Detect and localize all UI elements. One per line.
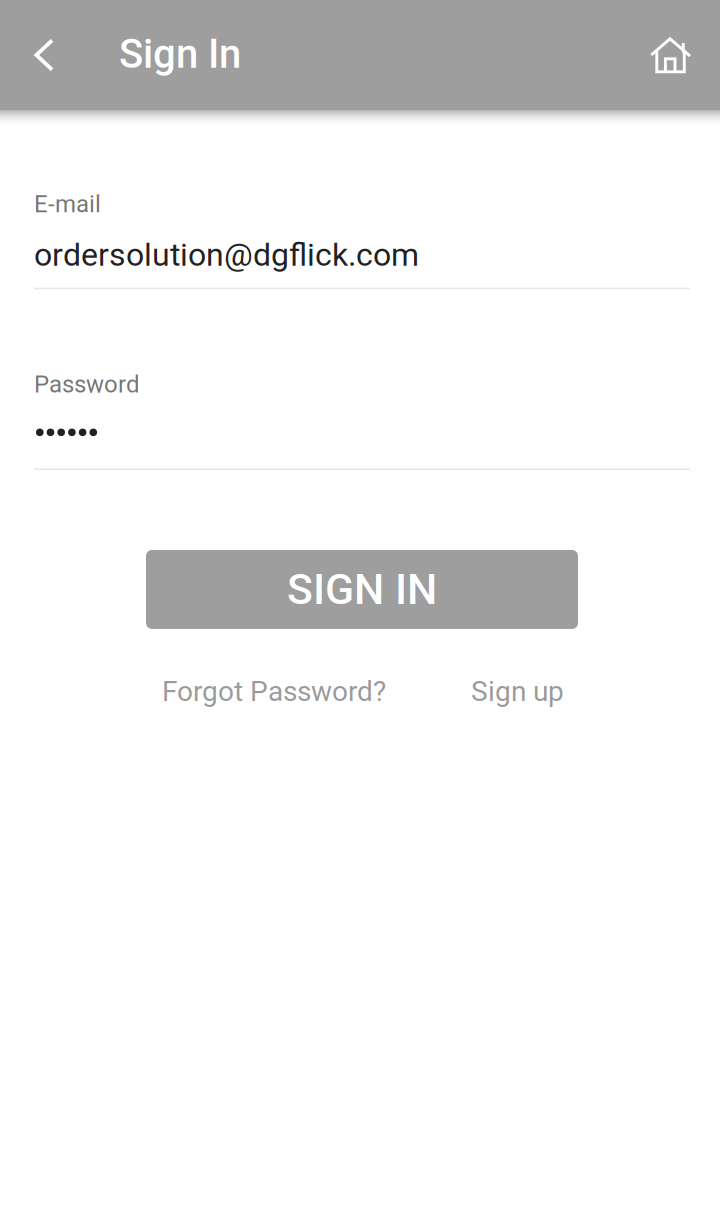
button[interactable]: Forgot Password? (162, 675, 386, 708)
staticText: Sign up (471, 675, 564, 708)
staticText: SIGN IN (287, 564, 437, 614)
button[interactable]: Sign up (471, 675, 564, 708)
button[interactable]: Back (9, 0, 79, 110)
staticText: E-mail (34, 190, 101, 218)
staticText: Password (34, 370, 140, 398)
button[interactable]: Home (630, 0, 710, 110)
button[interactable]: SIGN IN (146, 550, 578, 629)
staticText: Sign In (119, 31, 241, 77)
staticText: ordersolution@dgflick.com (34, 236, 419, 274)
staticText: Forgot Password? (162, 675, 386, 708)
